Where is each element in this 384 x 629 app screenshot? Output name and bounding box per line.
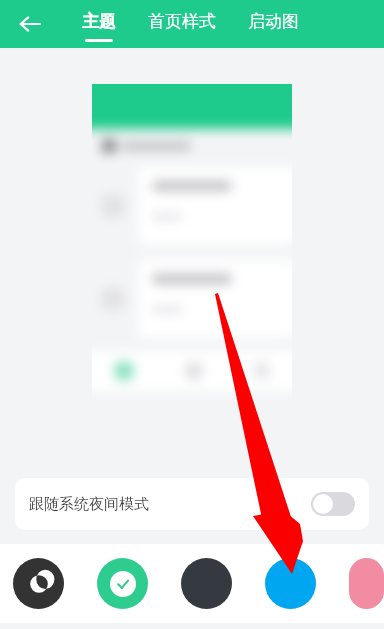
staticText: 跟随系统夜间模式	[29, 495, 149, 514]
button[interactable]: 主题	[78, 0, 120, 48]
button[interactable]: Blue theme	[265, 558, 316, 609]
button[interactable]: 首页样式	[144, 0, 220, 48]
button[interactable]: Follow system night mode toggle	[311, 492, 355, 516]
staticText: 主题	[82, 11, 116, 32]
button[interactable]: Green theme selected	[97, 558, 148, 609]
button[interactable]: Pink theme	[349, 558, 384, 609]
button[interactable]: Night theme	[13, 558, 64, 609]
staticText: 首页样式	[148, 11, 216, 32]
staticText: 启动图	[248, 11, 299, 32]
button[interactable]: Dark navy theme	[181, 558, 232, 609]
button[interactable]: 跟随系统夜间模式	[15, 478, 369, 530]
button[interactable]: Back	[8, 2, 52, 46]
button[interactable]: 启动图	[244, 0, 303, 48]
